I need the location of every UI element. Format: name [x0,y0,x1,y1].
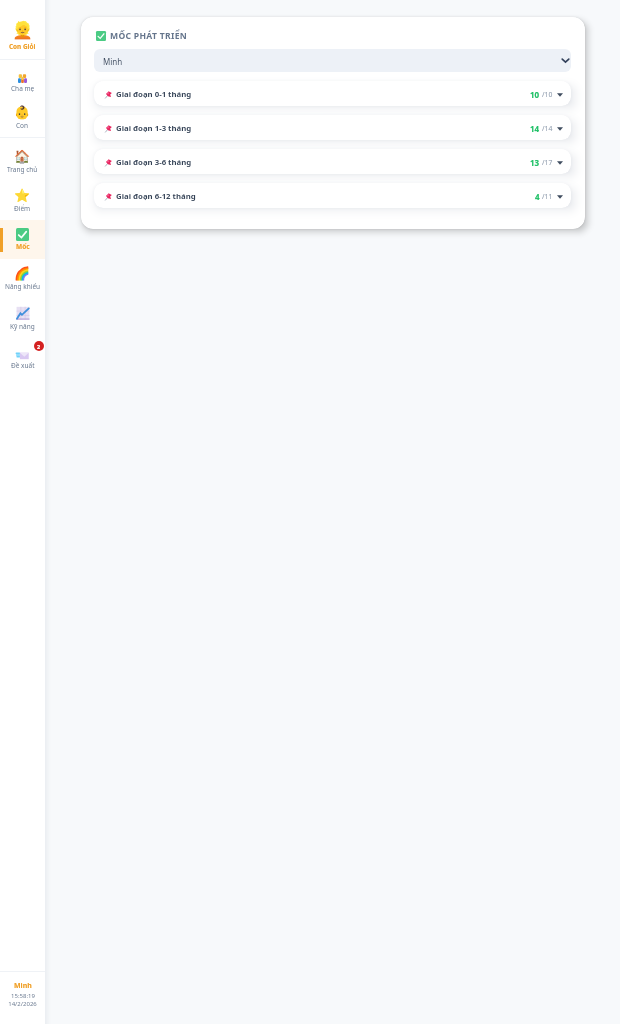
staticText: 👶 [14,105,31,120]
staticText: Trang chủ [7,165,38,174]
other: Chọn con [562,57,569,64]
staticText: Minh [103,56,123,67]
staticText: Con [16,121,29,130]
staticText: 14 [530,123,540,134]
button[interactable]: Mốc [0,220,45,259]
staticText: MỐC PHÁT TRIỂN [110,30,188,42]
button[interactable]: Giai đoạn 1-3 tháng [94,115,571,140]
button[interactable]: Giai đoạn 3-6 tháng [94,149,571,174]
staticText: 15:58:19 [11,992,35,1000]
staticText: 👱 [12,20,34,40]
staticText: Minh [14,981,32,991]
staticText: Giai đoạn 6-12 tháng [116,191,196,202]
staticText: Con Giỏi [9,42,36,51]
button[interactable]: Giai đoạn 6-12 tháng [94,183,571,208]
button[interactable]: Kỹ năng [0,298,45,337]
button[interactable]: Cha mẹ [0,66,45,100]
staticText: Mốc [16,242,30,251]
button[interactable]: Giai đoạn 0-1 tháng [94,81,571,106]
staticText: 🏠 [14,149,31,164]
staticText: Cha mẹ [11,84,35,93]
staticText: Điểm [14,204,31,213]
staticText: Đề xuất [11,361,35,370]
staticText: Giai đoạn 1-3 tháng [116,123,192,134]
staticText: 14/2/2026 [8,1000,37,1008]
button[interactable]: 🌈 [0,259,45,298]
button[interactable]: Minh [94,49,571,72]
staticText: Năng khiếu [5,282,41,291]
button[interactable]: ⭐ [0,181,45,220]
staticText: Giai đoạn 0-1 tháng [116,89,192,100]
staticText: Giai đoạn 3-6 tháng [116,157,192,168]
staticText: 10 [530,89,540,100]
staticText: 4 [535,191,540,202]
staticText: /17 [542,158,553,167]
staticText: Kỹ năng [10,322,35,331]
button[interactable]: 👶 [0,100,45,134]
staticText: /10 [542,90,553,99]
staticText: 🌈 [14,266,31,281]
staticText: 13 [530,157,540,168]
staticText: ⭐ [14,188,31,203]
button[interactable]: 🏠 [0,142,45,181]
button[interactable]: Đề xuất [0,337,45,376]
button[interactable]: 👱 [0,0,45,59]
staticText: /14 [542,124,553,133]
staticText: /11 [542,192,553,201]
staticText: 2 [37,343,41,350]
